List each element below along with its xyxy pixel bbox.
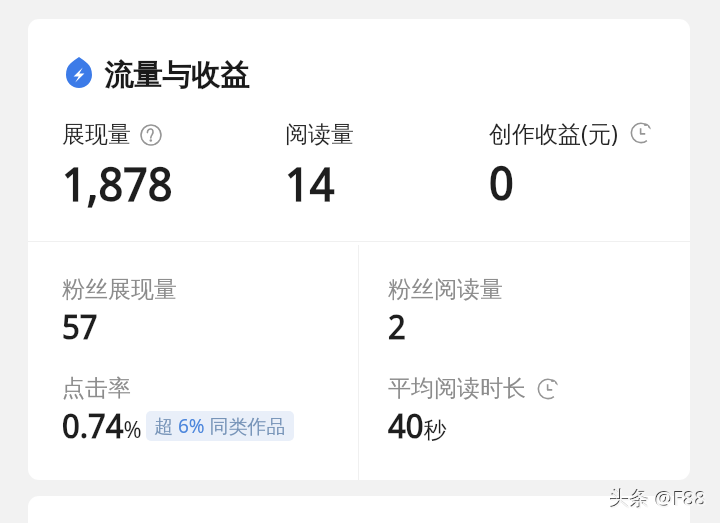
staticText: 超 6% 同类作品 xyxy=(154,413,286,439)
staticText: 57 xyxy=(62,304,98,349)
button[interactable]: 数据更新时间 xyxy=(537,378,559,400)
staticText: 2 xyxy=(388,304,406,349)
staticText: 粉丝展现量 xyxy=(62,275,177,304)
staticText: 14 xyxy=(285,152,335,215)
staticText: 粉丝阅读量 xyxy=(388,275,503,304)
staticText: 头条 @F88 xyxy=(610,485,707,512)
staticText: 点击率 xyxy=(62,374,131,403)
other: 流量与收益 xyxy=(66,57,92,88)
staticText: 0 xyxy=(489,151,514,214)
staticText: 创作收益(元) xyxy=(489,117,618,148)
staticText: 阅读量 xyxy=(285,120,354,149)
staticText: 40秒 xyxy=(388,403,447,448)
staticText: 0.74% xyxy=(62,403,142,448)
staticText: 头条 @F88 xyxy=(609,484,706,511)
button[interactable]: 流量与收益 xyxy=(64,49,288,93)
button[interactable]: 数据更新时间 xyxy=(630,122,652,144)
button[interactable]: 展现量说明 xyxy=(140,124,162,146)
staticText: 展现量 xyxy=(62,120,131,149)
staticText: 平均阅读时长 xyxy=(388,374,526,403)
button[interactable]: 超 6% 同类作品 xyxy=(146,411,294,441)
staticText: 流量与收益 xyxy=(104,57,249,94)
staticText: 1,878 xyxy=(62,152,173,215)
